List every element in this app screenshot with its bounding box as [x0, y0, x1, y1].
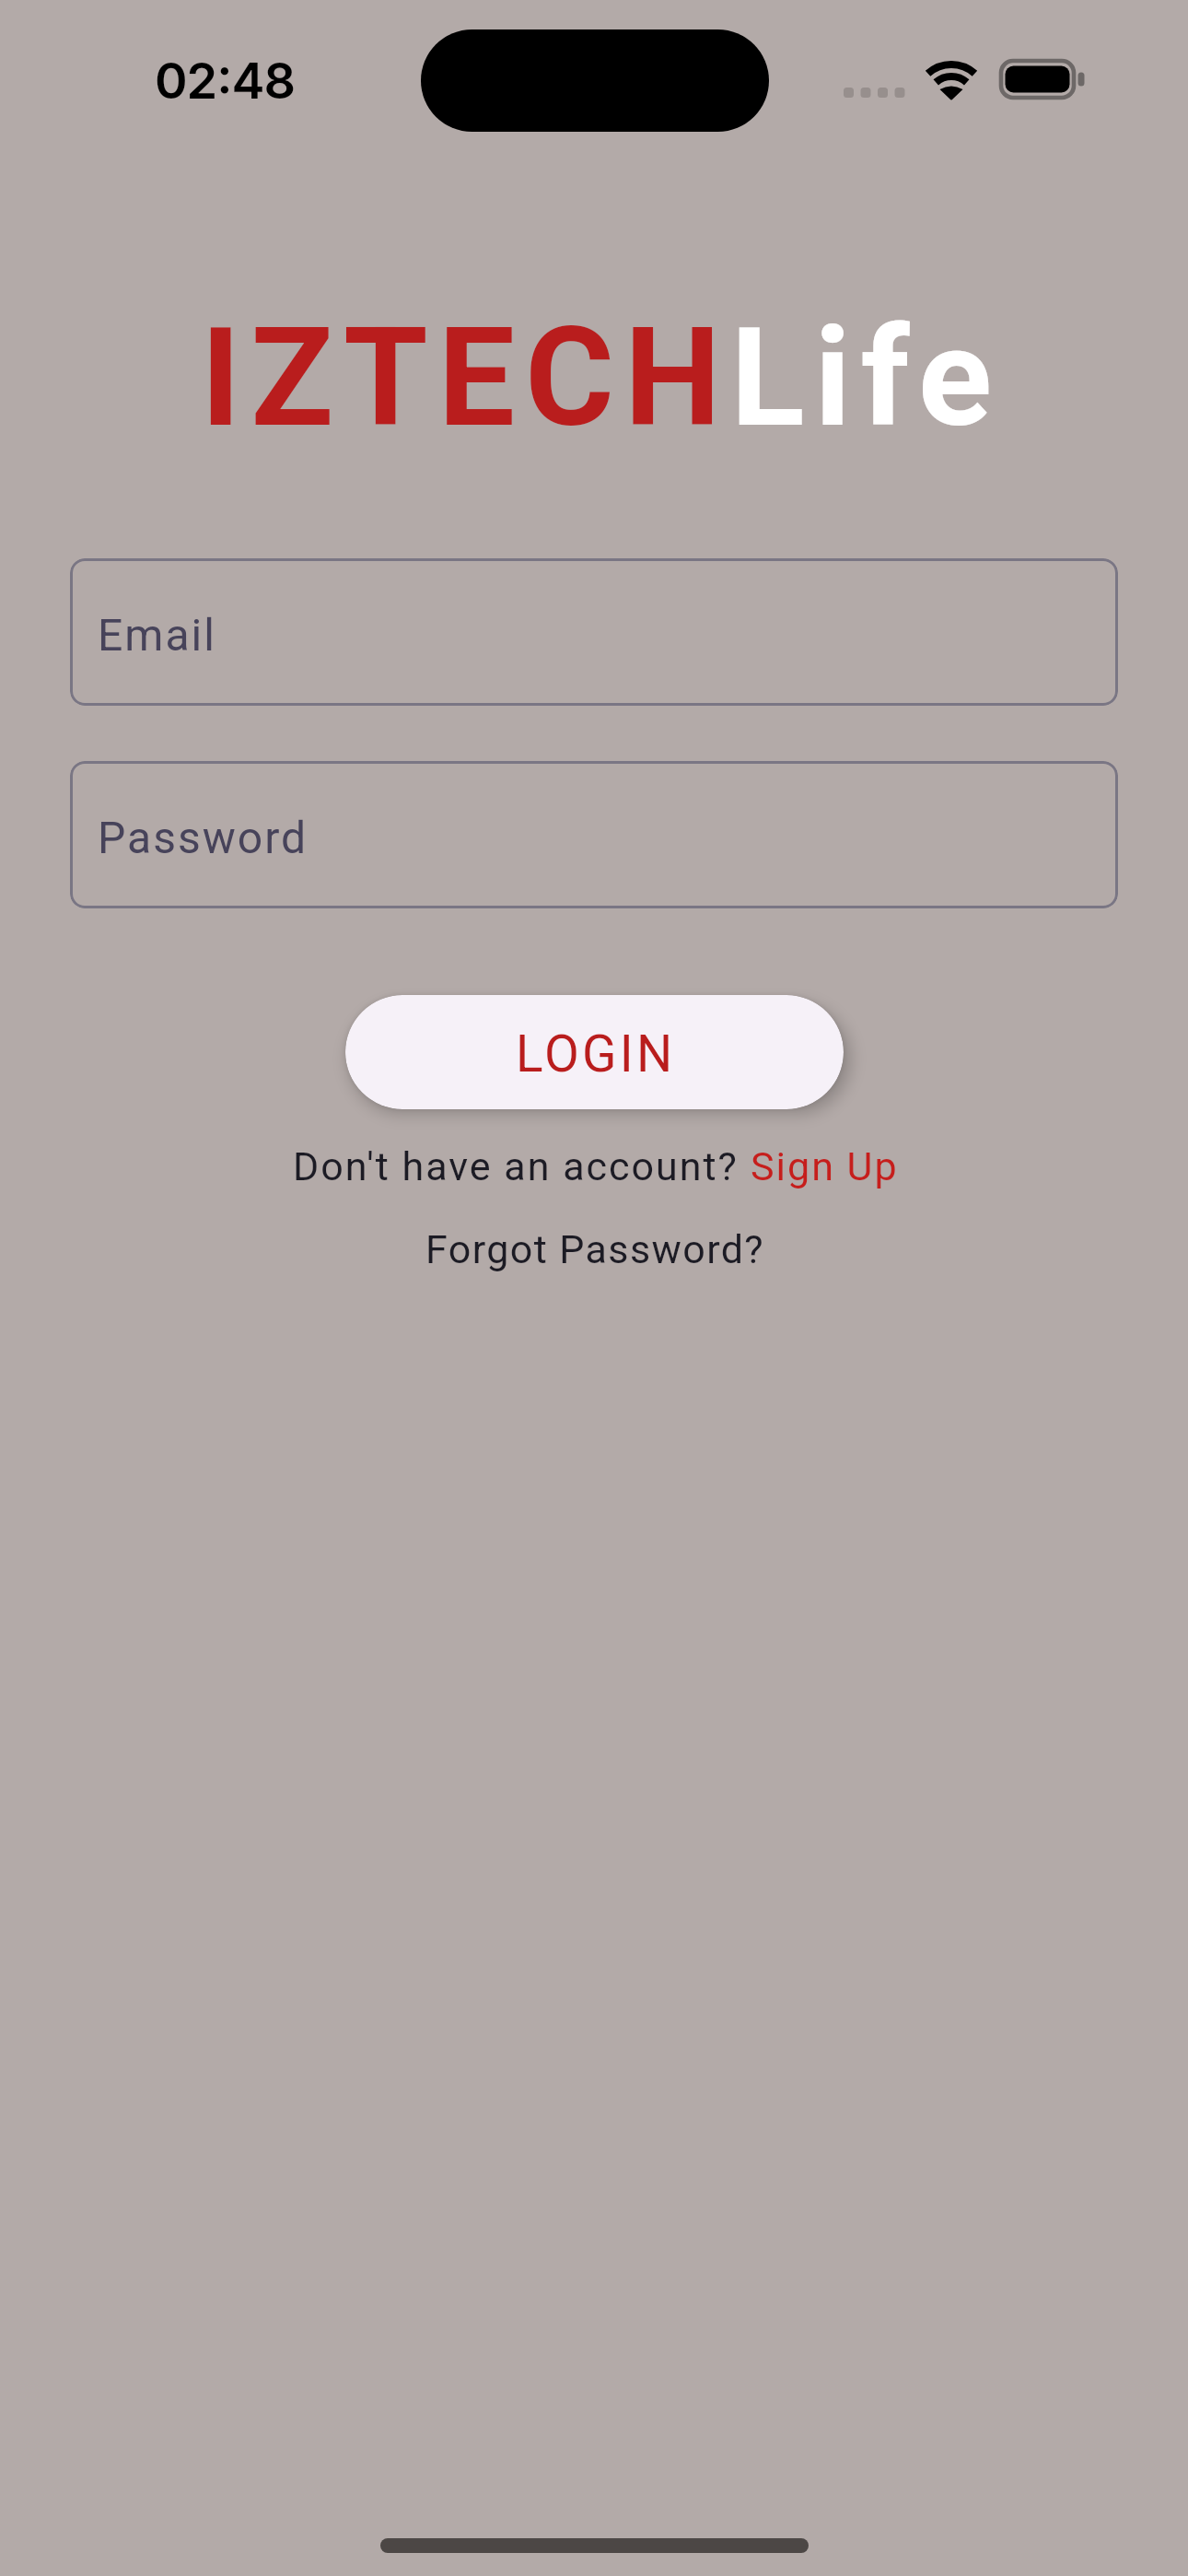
button[interactable]: Forgot Password? — [425, 1226, 765, 1272]
other: Cellular signal — [844, 88, 904, 99]
staticText: Password — [98, 812, 309, 863]
staticText: IZTECHLife — [201, 299, 1002, 458]
button[interactable]: LOGIN — [345, 995, 844, 1109]
button[interactable]: Email — [70, 558, 1118, 706]
staticText: Email — [98, 609, 216, 661]
button[interactable]: Sign Up — [751, 1143, 899, 1189]
staticText: Don't have an account? — [293, 1143, 751, 1189]
button[interactable]: Password — [70, 761, 1118, 908]
other: Battery — [999, 59, 1085, 100]
staticText: 02:48 — [155, 51, 296, 111]
other: Wi-Fi — [925, 61, 978, 100]
staticText: LOGIN — [516, 1025, 676, 1083]
staticText: Sign Up — [751, 1143, 899, 1189]
staticText: Forgot Password? — [425, 1226, 765, 1272]
